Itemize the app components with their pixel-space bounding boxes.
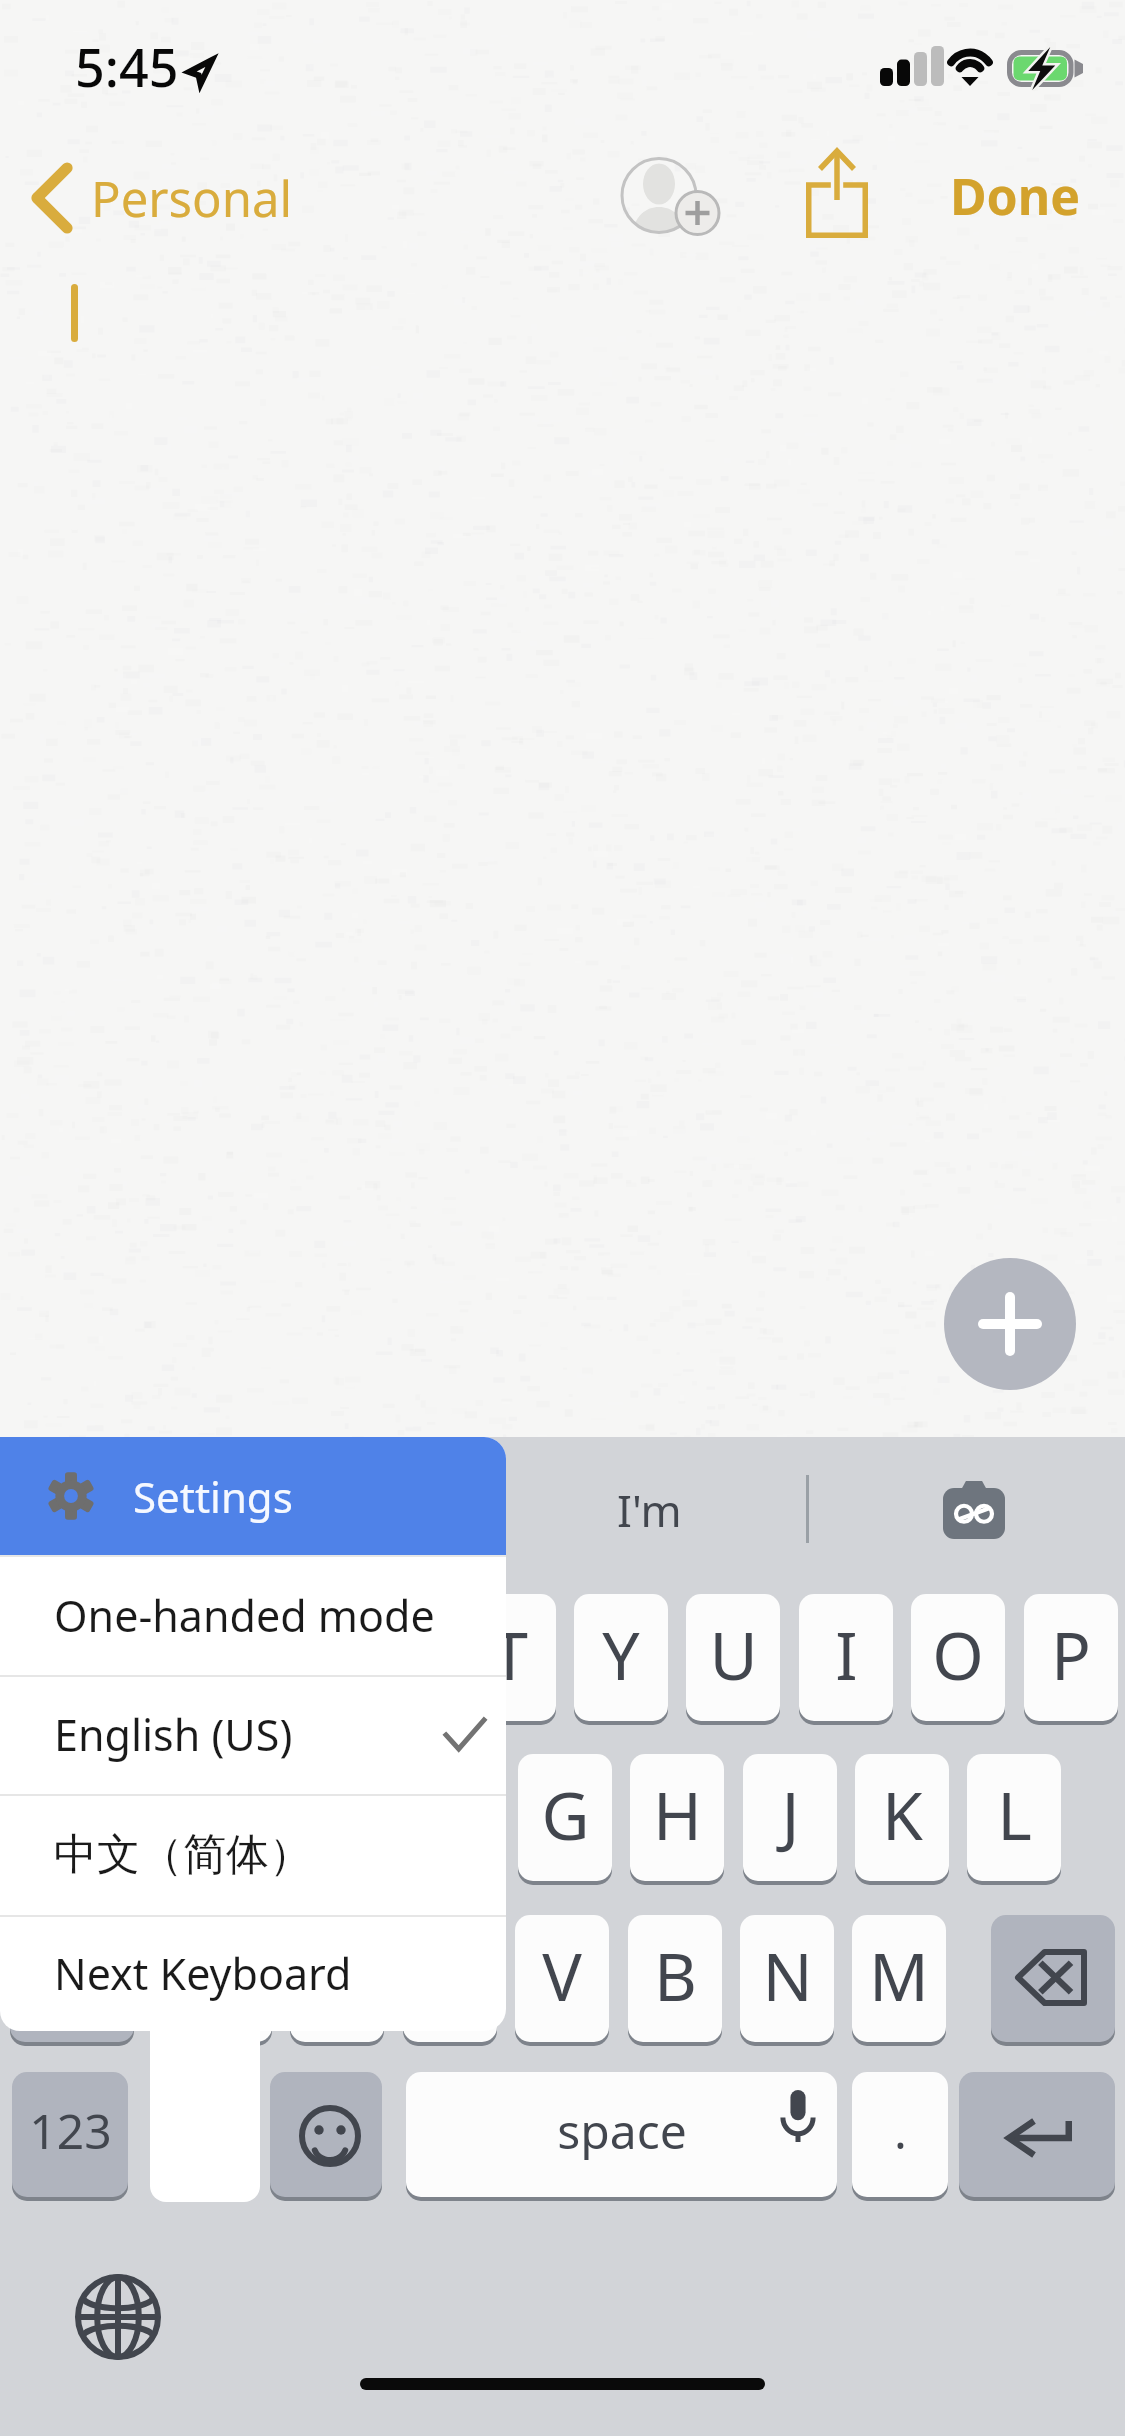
staticText: 123 (29, 2098, 112, 2163)
button[interactable]: E (237, 1594, 331, 1721)
staticText: S (210, 1769, 247, 1859)
button[interactable]: 中文（简体） (0, 1794, 506, 1915)
staticText: T (491, 1609, 528, 1699)
button[interactable]: F (405, 1754, 499, 1881)
staticText: X (318, 1930, 357, 2020)
button[interactable]: O (911, 1594, 1005, 1721)
staticText: H (653, 1769, 702, 1859)
button[interactable]: Share (790, 140, 886, 248)
staticText: 中文（简体） (54, 1828, 312, 1882)
button[interactable]: M (852, 1915, 946, 2042)
button[interactable]: B (628, 1915, 722, 2042)
button[interactable]: Backspace (991, 1915, 1115, 2042)
button[interactable]: K (855, 1754, 949, 1881)
staticText: Settings (133, 1468, 293, 1525)
staticText: Done (950, 162, 1081, 230)
button[interactable]: Stickers (943, 1481, 1005, 1539)
button[interactable]: Emoji (270, 2072, 382, 2197)
staticText: D (316, 1769, 365, 1859)
button[interactable]: Q (12, 1594, 106, 1721)
button[interactable]: T (462, 1594, 556, 1721)
button[interactable]: V (515, 1915, 609, 2042)
staticText: English (US) (54, 1705, 293, 1764)
button[interactable]: Next keyboard (60, 2259, 176, 2375)
staticText: P (1051, 1609, 1091, 1699)
button[interactable]: U (686, 1594, 780, 1721)
staticText: Q (33, 1609, 85, 1699)
staticText: I'm (617, 1480, 682, 1540)
staticText: space (557, 2098, 687, 2163)
staticText: I (835, 1609, 858, 1699)
staticText: One-handed mode (54, 1586, 435, 1645)
staticText: Z (206, 1930, 244, 2020)
staticText: A (94, 1769, 137, 1859)
staticText: U (709, 1609, 758, 1699)
staticText: B (654, 1930, 697, 2020)
staticText: K (882, 1769, 923, 1859)
staticText: W (140, 1609, 202, 1699)
button[interactable]: C (403, 1915, 497, 2042)
button[interactable]: . (852, 2072, 948, 2197)
staticText: V (542, 1930, 582, 2020)
button[interactable]: space (406, 2072, 837, 2197)
button[interactable]: R (349, 1594, 443, 1721)
staticText: L (997, 1769, 1032, 1859)
button[interactable]: One-handed mode (0, 1555, 506, 1675)
button[interactable]: S (181, 1754, 275, 1881)
button[interactable]: Add people (606, 143, 728, 247)
button[interactable]: I'm (574, 1455, 724, 1565)
button[interactable]: Done (950, 146, 1081, 246)
button[interactable]: J (743, 1754, 837, 1881)
button[interactable]: 123 (12, 2072, 128, 2197)
staticText: M (869, 1930, 929, 2020)
button[interactable]: Return (959, 2072, 1115, 2197)
button[interactable]: L (967, 1754, 1061, 1881)
button[interactable]: H (630, 1754, 724, 1881)
button[interactable]: A (68, 1754, 162, 1881)
button[interactable]: P (1024, 1594, 1118, 1721)
button[interactable]: Personal (31, 148, 293, 248)
button[interactable]: I (799, 1594, 893, 1721)
button[interactable]: W (124, 1594, 218, 1721)
button[interactable]: English (US) (0, 1675, 506, 1794)
button[interactable]: Y (574, 1594, 668, 1721)
button[interactable]: Z (178, 1915, 272, 2042)
button[interactable]: Settings (0, 1437, 506, 1555)
staticText: . (894, 2098, 907, 2163)
button[interactable]: G (518, 1754, 612, 1881)
staticText: Y (602, 1609, 640, 1699)
staticText: O (932, 1609, 984, 1699)
button[interactable]: Next Keyboard (0, 1915, 506, 2031)
button[interactable]: N (740, 1915, 834, 2042)
button[interactable]: X (290, 1915, 384, 2042)
staticText: R (375, 1609, 417, 1699)
button[interactable]: Shift (10, 1915, 134, 2042)
staticText: Next Keyboard (54, 1944, 352, 2003)
staticText: J (781, 1769, 800, 1859)
button[interactable]: Add (944, 1258, 1076, 1390)
button[interactable]: D (293, 1754, 387, 1881)
staticText: E (266, 1609, 303, 1699)
staticText: N (762, 1930, 813, 2020)
staticText: F (435, 1769, 470, 1859)
staticText: G (541, 1769, 590, 1859)
staticText: 5:45 (75, 31, 179, 102)
staticText: Personal (91, 165, 293, 232)
